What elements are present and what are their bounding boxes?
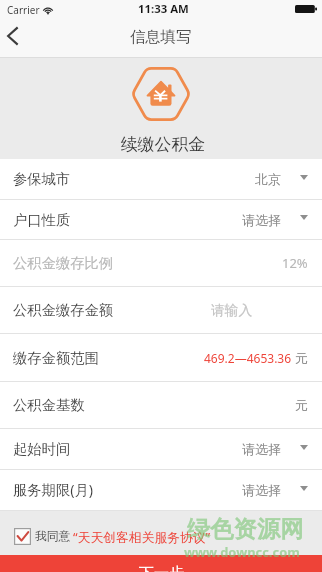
- staticText: 请选择: [242, 212, 281, 228]
- staticText: 起始时间: [13, 440, 71, 458]
- button[interactable]: 服务期限(月): [0, 470, 322, 510]
- staticText: 参保城市: [13, 170, 71, 188]
- staticText: 绿色资源网: [187, 515, 304, 544]
- staticText: 北京: [255, 171, 281, 187]
- staticText: 公积金缴存比例: [13, 254, 114, 272]
- button[interactable]: 公积金缴存金额: [0, 287, 322, 333]
- button[interactable]: 公积金缴存比例: [0, 240, 322, 286]
- staticText: 服务期限(月): [13, 480, 94, 500]
- button[interactable]: 下一步: [0, 555, 322, 572]
- staticText: Carrier: [7, 3, 40, 17]
- button[interactable]: 参保城市: [0, 159, 322, 199]
- staticText: 12%: [282, 254, 308, 272]
- staticText: 11:33 AM: [138, 1, 189, 17]
- staticText: 我同意: [35, 529, 71, 544]
- button[interactable]: 公积金基数: [0, 382, 322, 428]
- button[interactable]: 我同意: [14, 528, 211, 545]
- staticText: www.downcc.com: [184, 543, 300, 561]
- staticText: 请输入: [211, 302, 253, 319]
- button[interactable]: 起始时间: [0, 429, 322, 469]
- staticText: 户口性质: [13, 211, 71, 229]
- staticText: 续缴公积金: [121, 134, 205, 155]
- staticText: 信息填写: [130, 27, 192, 46]
- staticText: 缴存金额范围: [13, 349, 99, 367]
- staticText: “天天创客相关服务协议”: [73, 528, 211, 545]
- button[interactable]: 缴存金额范围: [0, 334, 322, 381]
- staticText: 请选择: [242, 482, 281, 498]
- staticText: 元: [295, 350, 308, 366]
- button[interactable]: Back: [0, 20, 34, 58]
- staticText: 下一步: [139, 564, 184, 572]
- staticText: 公积金基数: [13, 396, 85, 414]
- staticText: 元: [295, 397, 308, 413]
- staticText: 469.2—4653.36: [204, 350, 292, 366]
- staticText: 请选择: [242, 441, 281, 457]
- button[interactable]: 户口性质: [0, 200, 322, 239]
- staticText: 公积金缴存金额: [13, 301, 114, 319]
